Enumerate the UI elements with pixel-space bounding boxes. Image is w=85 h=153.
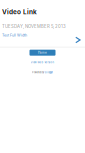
staticText: View web version xyxy=(30,61,54,64)
button[interactable]: View web version xyxy=(30,61,54,64)
staticText: TUESDAY, NOVEMBER 5, 2013 xyxy=(2,24,66,29)
button[interactable]: Test Full Width xyxy=(0,29,27,37)
staticText: Home xyxy=(38,51,47,54)
staticText: Test Full Width xyxy=(2,33,27,37)
button[interactable]: Home xyxy=(29,50,55,56)
staticText: Blogger xyxy=(45,71,53,74)
button[interactable]: Blogger xyxy=(45,71,53,74)
staticText: Powered by xyxy=(32,71,44,74)
staticText: Video Link xyxy=(2,8,37,16)
button[interactable]: Next post xyxy=(76,37,85,43)
